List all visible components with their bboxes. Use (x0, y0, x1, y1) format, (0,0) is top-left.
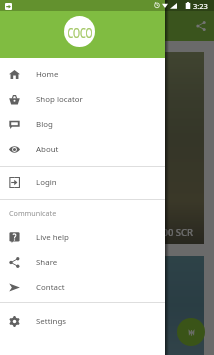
staticText: 3:23 (193, 1, 208, 11)
staticText: Blog (36, 119, 53, 130)
button[interactable]: Share (0, 250, 165, 275)
button[interactable] (10, 256, 204, 355)
button[interactable]: About (0, 137, 165, 162)
staticText: Login (36, 177, 57, 188)
button[interactable]: 2,400 SCR (10, 52, 204, 244)
button[interactable]: Login (0, 170, 165, 195)
button[interactable]: Add (177, 318, 205, 346)
staticText: Contact (36, 282, 65, 293)
staticText: Settings (36, 316, 67, 327)
staticText: Shop locator (36, 94, 83, 105)
staticText: Communicate (9, 208, 57, 218)
staticText: Home (36, 69, 59, 80)
button[interactable]: Live help (0, 225, 165, 250)
staticText: COCO (67, 23, 93, 41)
button[interactable]: Share (196, 21, 206, 31)
staticText: Live help (36, 232, 69, 243)
staticText: 2,400 SCR (149, 226, 194, 239)
button[interactable]: Home (0, 62, 165, 87)
staticText: About (36, 144, 59, 155)
button[interactable]: Contact (0, 275, 165, 300)
button[interactable]: Blog (0, 112, 165, 137)
staticText: Share (36, 257, 58, 268)
button[interactable]: Shop locator (0, 87, 165, 112)
button[interactable]: Settings (0, 309, 165, 334)
